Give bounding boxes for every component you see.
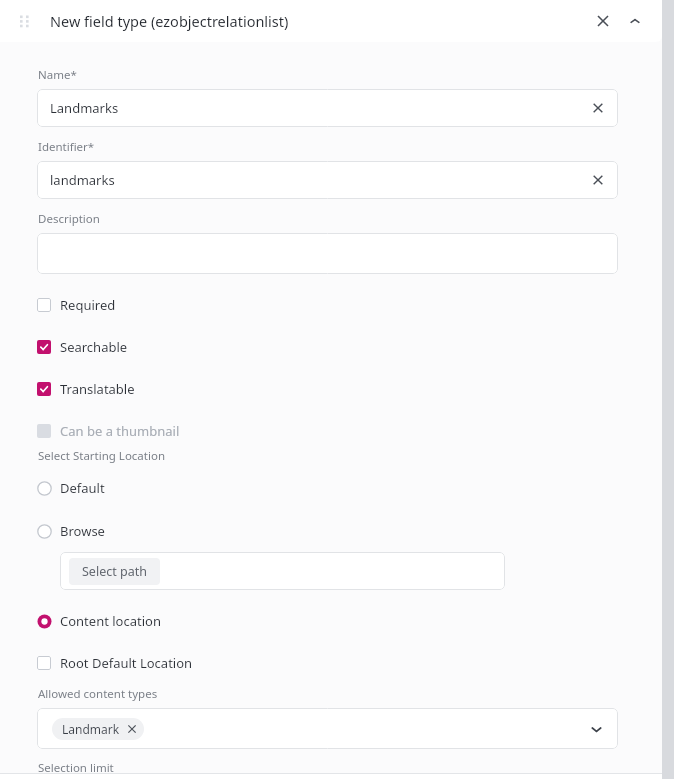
button[interactable]: Landmark xyxy=(52,718,144,740)
staticText: Can be a thumbnail xyxy=(60,422,180,440)
staticText: Landmark xyxy=(62,721,120,737)
staticText: landmarks xyxy=(50,171,115,189)
staticText: Default xyxy=(60,479,105,497)
staticText: New field type (ezobjectrelationlist) xyxy=(50,11,289,31)
staticText: Identifier* xyxy=(38,139,95,155)
button[interactable]: Browse xyxy=(0,518,662,544)
staticText: Searchable xyxy=(60,338,128,356)
staticText: Translatable xyxy=(60,380,135,398)
staticText: Browse xyxy=(60,522,105,540)
button[interactable]: Default xyxy=(0,475,662,501)
button[interactable]: Open list xyxy=(586,719,606,739)
button[interactable]: Root Default Location xyxy=(0,650,662,676)
staticText: Select path xyxy=(82,563,147,580)
button[interactable]: Clear xyxy=(589,99,607,117)
button[interactable]: Searchable xyxy=(0,334,662,360)
button[interactable] xyxy=(37,233,618,274)
staticText: Description xyxy=(38,211,100,227)
staticText: Required xyxy=(60,296,116,314)
button[interactable]: Can be a thumbnail xyxy=(0,418,662,444)
staticText: Root Default Location xyxy=(60,654,193,672)
button[interactable]: Clear xyxy=(589,171,607,189)
staticText: Selection limit xyxy=(38,760,114,773)
button[interactable]: Translatable xyxy=(0,376,662,402)
button[interactable]: Close xyxy=(588,6,618,36)
button[interactable]: Landmark xyxy=(37,708,618,749)
button[interactable]: Drag xyxy=(16,12,34,30)
staticText: Content location xyxy=(60,612,161,630)
button[interactable]: Required xyxy=(0,292,662,318)
staticText: Landmarks xyxy=(50,99,119,117)
button[interactable]: Collapse xyxy=(620,6,650,36)
staticText: Allowed content types xyxy=(38,686,158,702)
button[interactable]: Select path xyxy=(69,558,160,585)
staticText: Select Starting Location xyxy=(38,448,166,464)
staticText: Name* xyxy=(38,67,77,83)
button[interactable]: Content location xyxy=(0,608,662,634)
button[interactable]: landmarks xyxy=(37,161,618,199)
button[interactable]: Landmarks xyxy=(37,89,618,127)
